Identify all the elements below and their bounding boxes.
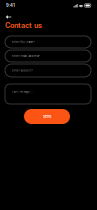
staticText: Type message... xyxy=(11,90,33,93)
staticText: 9:41 xyxy=(6,3,15,8)
staticText: Contact us xyxy=(5,21,42,30)
staticText: Enter email address* xyxy=(11,54,39,58)
button[interactable]: Enter email address* xyxy=(5,50,91,62)
staticText: Send xyxy=(43,114,51,119)
button[interactable]: Back xyxy=(4,12,13,22)
button[interactable]: Enter full name* xyxy=(5,36,91,48)
staticText: Enter full name* xyxy=(11,40,34,44)
button[interactable]: Send xyxy=(24,109,70,124)
button[interactable]: Enter subject* xyxy=(5,64,91,77)
button[interactable]: Type message... xyxy=(5,84,91,104)
staticText: Enter subject* xyxy=(11,69,32,72)
